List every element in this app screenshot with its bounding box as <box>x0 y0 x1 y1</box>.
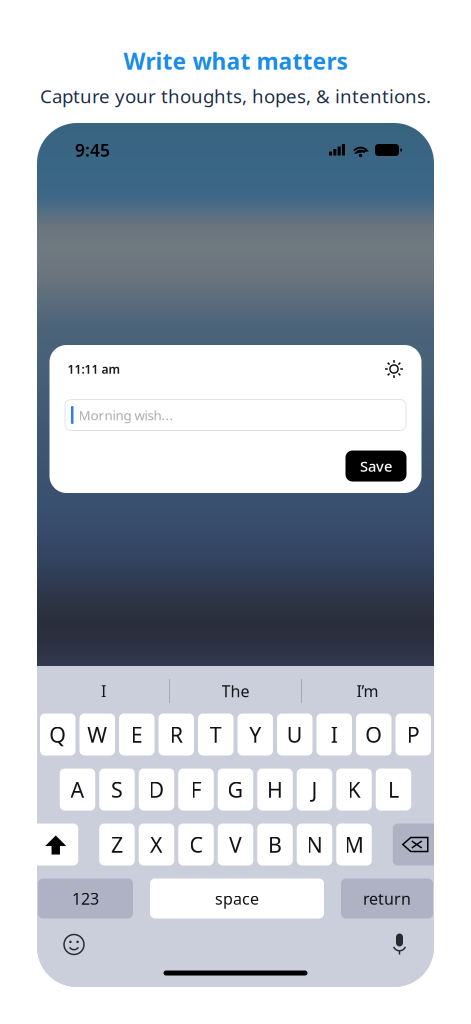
staticText: Morning wish... <box>78 406 173 424</box>
button[interactable]: E <box>119 713 154 755</box>
staticText: O <box>365 720 382 749</box>
staticText: H <box>267 775 283 804</box>
staticText: I <box>101 680 106 702</box>
button[interactable]: R <box>158 713 194 755</box>
staticText: Save <box>360 456 392 476</box>
staticText: F <box>190 775 201 804</box>
button[interactable]: M <box>336 823 372 865</box>
staticText: Q <box>49 720 66 749</box>
button[interactable]: Emoji <box>63 933 85 955</box>
button[interactable]: K <box>336 768 372 810</box>
button[interactable]: Shift <box>33 823 78 865</box>
staticText: 123 <box>72 888 99 909</box>
button[interactable]: H <box>257 768 293 810</box>
button[interactable]: T <box>198 713 233 755</box>
button[interactable]: J <box>297 768 332 810</box>
button[interactable]: W <box>79 713 115 755</box>
staticText: return <box>363 888 411 909</box>
staticText: J <box>311 775 317 804</box>
button[interactable]: G <box>218 768 253 810</box>
staticText: E <box>131 720 143 749</box>
button[interactable]: L <box>376 768 411 810</box>
button[interactable]: return <box>341 878 433 918</box>
staticText: I’m <box>356 680 378 702</box>
button[interactable]: Dictate <box>391 933 408 955</box>
button[interactable]: I <box>38 668 169 713</box>
button[interactable]: X <box>139 823 174 865</box>
staticText: S <box>111 775 123 804</box>
button[interactable]: D <box>139 768 174 810</box>
staticText: 11:11 am <box>67 361 120 377</box>
staticText: 9:45 <box>75 138 110 161</box>
staticText: Y <box>249 720 261 749</box>
button[interactable]: N <box>297 823 332 865</box>
staticText: C <box>189 830 202 859</box>
button[interactable]: 123 <box>38 878 133 918</box>
staticText: Write what matters <box>123 46 347 76</box>
staticText: U <box>287 720 303 749</box>
button[interactable]: The <box>170 668 301 713</box>
staticText: R <box>170 720 183 749</box>
staticText: T <box>210 720 222 749</box>
button[interactable]: U <box>277 713 312 755</box>
button[interactable]: V <box>218 823 253 865</box>
staticText: K <box>347 775 360 804</box>
staticText: A <box>70 775 84 804</box>
staticText: Capture your thoughts, hopes, & intentio… <box>40 84 431 108</box>
staticText: M <box>344 830 363 859</box>
staticText: B <box>268 830 282 859</box>
button[interactable]: A <box>60 768 95 810</box>
button[interactable]: F <box>178 768 214 810</box>
staticText: G <box>227 775 243 804</box>
button[interactable]: Q <box>40 713 75 755</box>
button[interactable]: S <box>99 768 135 810</box>
staticText: Z <box>111 830 123 859</box>
button[interactable]: B <box>257 823 293 865</box>
staticText: D <box>148 775 164 804</box>
staticText: P <box>407 720 420 749</box>
staticText: The <box>221 680 249 702</box>
button[interactable]: O <box>356 713 391 755</box>
button[interactable]: I <box>316 713 352 755</box>
button[interactable]: Y <box>237 713 273 755</box>
button[interactable]: Z <box>99 823 135 865</box>
staticText: W <box>87 720 107 749</box>
staticText: space <box>215 888 259 909</box>
button[interactable]: I’m <box>302 668 433 713</box>
button[interactable]: Save <box>345 450 406 481</box>
button[interactable]: C <box>178 823 214 865</box>
button[interactable]: space <box>150 878 324 918</box>
staticText: I <box>331 720 338 749</box>
button[interactable]: P <box>395 713 431 755</box>
staticText: L <box>388 775 399 804</box>
staticText: X <box>150 830 163 859</box>
staticText: V <box>229 830 242 859</box>
staticText: N <box>306 830 322 859</box>
button[interactable]: Delete <box>393 823 438 865</box>
